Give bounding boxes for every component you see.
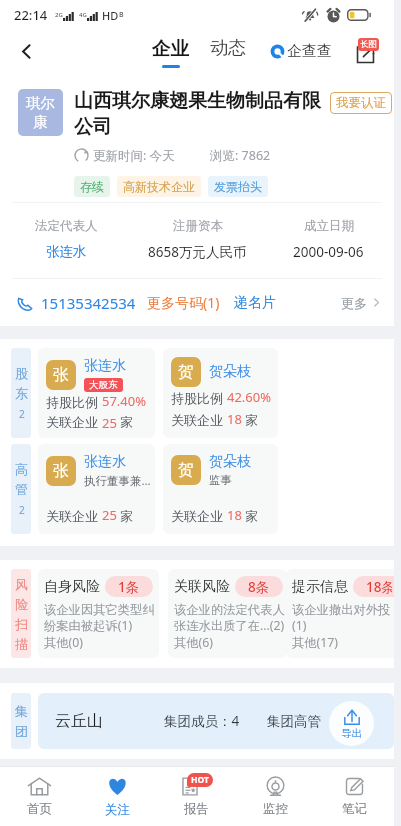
button[interactable]: 我要认证 (330, 92, 392, 114)
staticText: 2 (19, 407, 25, 421)
staticText: 关注 (105, 802, 130, 818)
staticText: 该企业撤出对外投 (292, 602, 391, 617)
button[interactable]: 15135342534 (0, 279, 394, 326)
button[interactable]: 动态 (204, 30, 252, 73)
staticText: 管 (15, 481, 28, 497)
staticText: 贺 (178, 460, 194, 480)
button[interactable]: 笔记 (315, 767, 394, 826)
staticText: 张连水 (84, 453, 126, 471)
staticText: 张 (53, 461, 69, 481)
staticText: 提示信息 (292, 578, 348, 596)
staticText: 导出 (341, 727, 362, 740)
button[interactable]: 风 (11, 569, 31, 658)
staticText: 递名片 (234, 294, 276, 312)
staticText: 57.40% (102, 392, 147, 410)
staticText: 关联企业 (171, 412, 223, 428)
staticText: 25 (102, 414, 117, 428)
staticText: HOT (191, 774, 209, 786)
button[interactable]: 导出 Export (329, 701, 374, 746)
staticText: 首页 (27, 801, 52, 817)
staticText: 集团高管 (267, 713, 321, 730)
staticText: 更新时间: 今天 (93, 147, 175, 164)
button[interactable]: 提示信息 (286, 569, 394, 658)
button[interactable]: 企查查 (270, 30, 332, 73)
button[interactable]: 云丘山 (38, 693, 394, 749)
staticText: 8658万元人民币 (148, 243, 247, 261)
staticText: 家 (120, 508, 133, 524)
staticText: 家 (245, 508, 258, 524)
button[interactable]: 监控 (236, 767, 315, 826)
staticText: 贺朵枝 (209, 363, 251, 381)
button[interactable]: 集 (11, 693, 31, 749)
button[interactable]: 发票抬头 (208, 176, 268, 197)
staticText: (1) (292, 617, 307, 634)
staticText: 家 (120, 414, 133, 428)
staticText: 18条 (366, 578, 392, 596)
staticText: 2000-09-06 (293, 243, 364, 261)
button[interactable]: 自身风险 (38, 569, 159, 658)
staticText: 报告 (184, 801, 209, 817)
staticText: 关联企业 (46, 508, 98, 524)
staticText: 描 (15, 636, 28, 652)
button[interactable]: 企业 (145, 30, 195, 73)
staticText: 风 (15, 576, 28, 592)
staticText: 8条 (248, 578, 270, 596)
staticText: 25 (102, 506, 117, 524)
button[interactable]: 张 (38, 348, 155, 438)
button[interactable]: 长图 Share long image (355, 39, 383, 65)
staticText: 成立日期 (304, 218, 354, 234)
staticText: 扫 (15, 616, 28, 632)
staticText: 险 (15, 596, 28, 612)
button[interactable]: 存续 (74, 176, 110, 197)
staticText: 集团成员：4 (164, 712, 240, 730)
staticText: 贺 (178, 362, 194, 382)
staticText: 张连水 (46, 243, 87, 260)
staticText: 云丘山 (55, 711, 103, 731)
staticText: 团 (15, 723, 28, 739)
staticText: 2G (55, 11, 63, 19)
staticText: 1条 (118, 578, 140, 596)
staticText: 笔记 (342, 801, 367, 817)
button[interactable]: 张 (38, 444, 155, 534)
staticText: 该企业的法定代表人 (174, 602, 285, 617)
staticText: 纷案由被起诉(1) (44, 617, 133, 634)
button[interactable]: 首页 (0, 767, 78, 826)
staticText: B (119, 10, 124, 20)
staticText: 我要认证 (336, 95, 386, 111)
staticText: 2 (19, 503, 25, 517)
button[interactable]: 贺 (163, 348, 278, 438)
staticText: 关联风险 (174, 578, 230, 596)
button[interactable]: HOT (157, 767, 236, 826)
staticText: 法定代表人 (35, 218, 98, 234)
button[interactable]: Back (8, 30, 44, 73)
staticText: 长图 (360, 39, 377, 50)
button[interactable]: 贺 (163, 444, 278, 534)
button[interactable]: 高 (11, 444, 31, 534)
staticText: 18 (227, 410, 242, 428)
staticText: 更多号码(1) (147, 293, 220, 312)
staticText: 其他(17) (292, 634, 339, 651)
staticText: 关联企业 (171, 508, 223, 524)
staticText: 大股东 (89, 379, 118, 391)
staticText: 其他(6) (174, 634, 214, 651)
button[interactable]: 关注 (78, 767, 157, 826)
staticText: 42.60% (227, 388, 272, 406)
staticText: 张 (53, 365, 69, 385)
staticText: 更多 (341, 295, 367, 311)
staticText: 存续 (80, 179, 104, 194)
staticText: 股 (15, 365, 28, 381)
button[interactable]: 股 (11, 348, 31, 438)
staticText: 监事 (209, 473, 232, 487)
staticText: 企业 (152, 37, 189, 60)
button[interactable]: 关联风险 (168, 569, 287, 658)
staticText: 注册资本 (173, 218, 223, 234)
staticText: 浏览: 7862 (210, 147, 271, 164)
staticText: 高新技术企业 (123, 179, 195, 194)
staticText: 发票抬头 (214, 179, 262, 194)
button[interactable]: 高新技术企业 (117, 176, 201, 197)
staticText: HD (102, 8, 119, 23)
staticText: 15135342534 (41, 293, 136, 313)
staticText: 该企业因其它类型纠 (44, 602, 155, 617)
staticText: 山西琪尔康翅果生物制品有限公司 (74, 89, 326, 136)
staticText: 企查查 (287, 42, 332, 61)
